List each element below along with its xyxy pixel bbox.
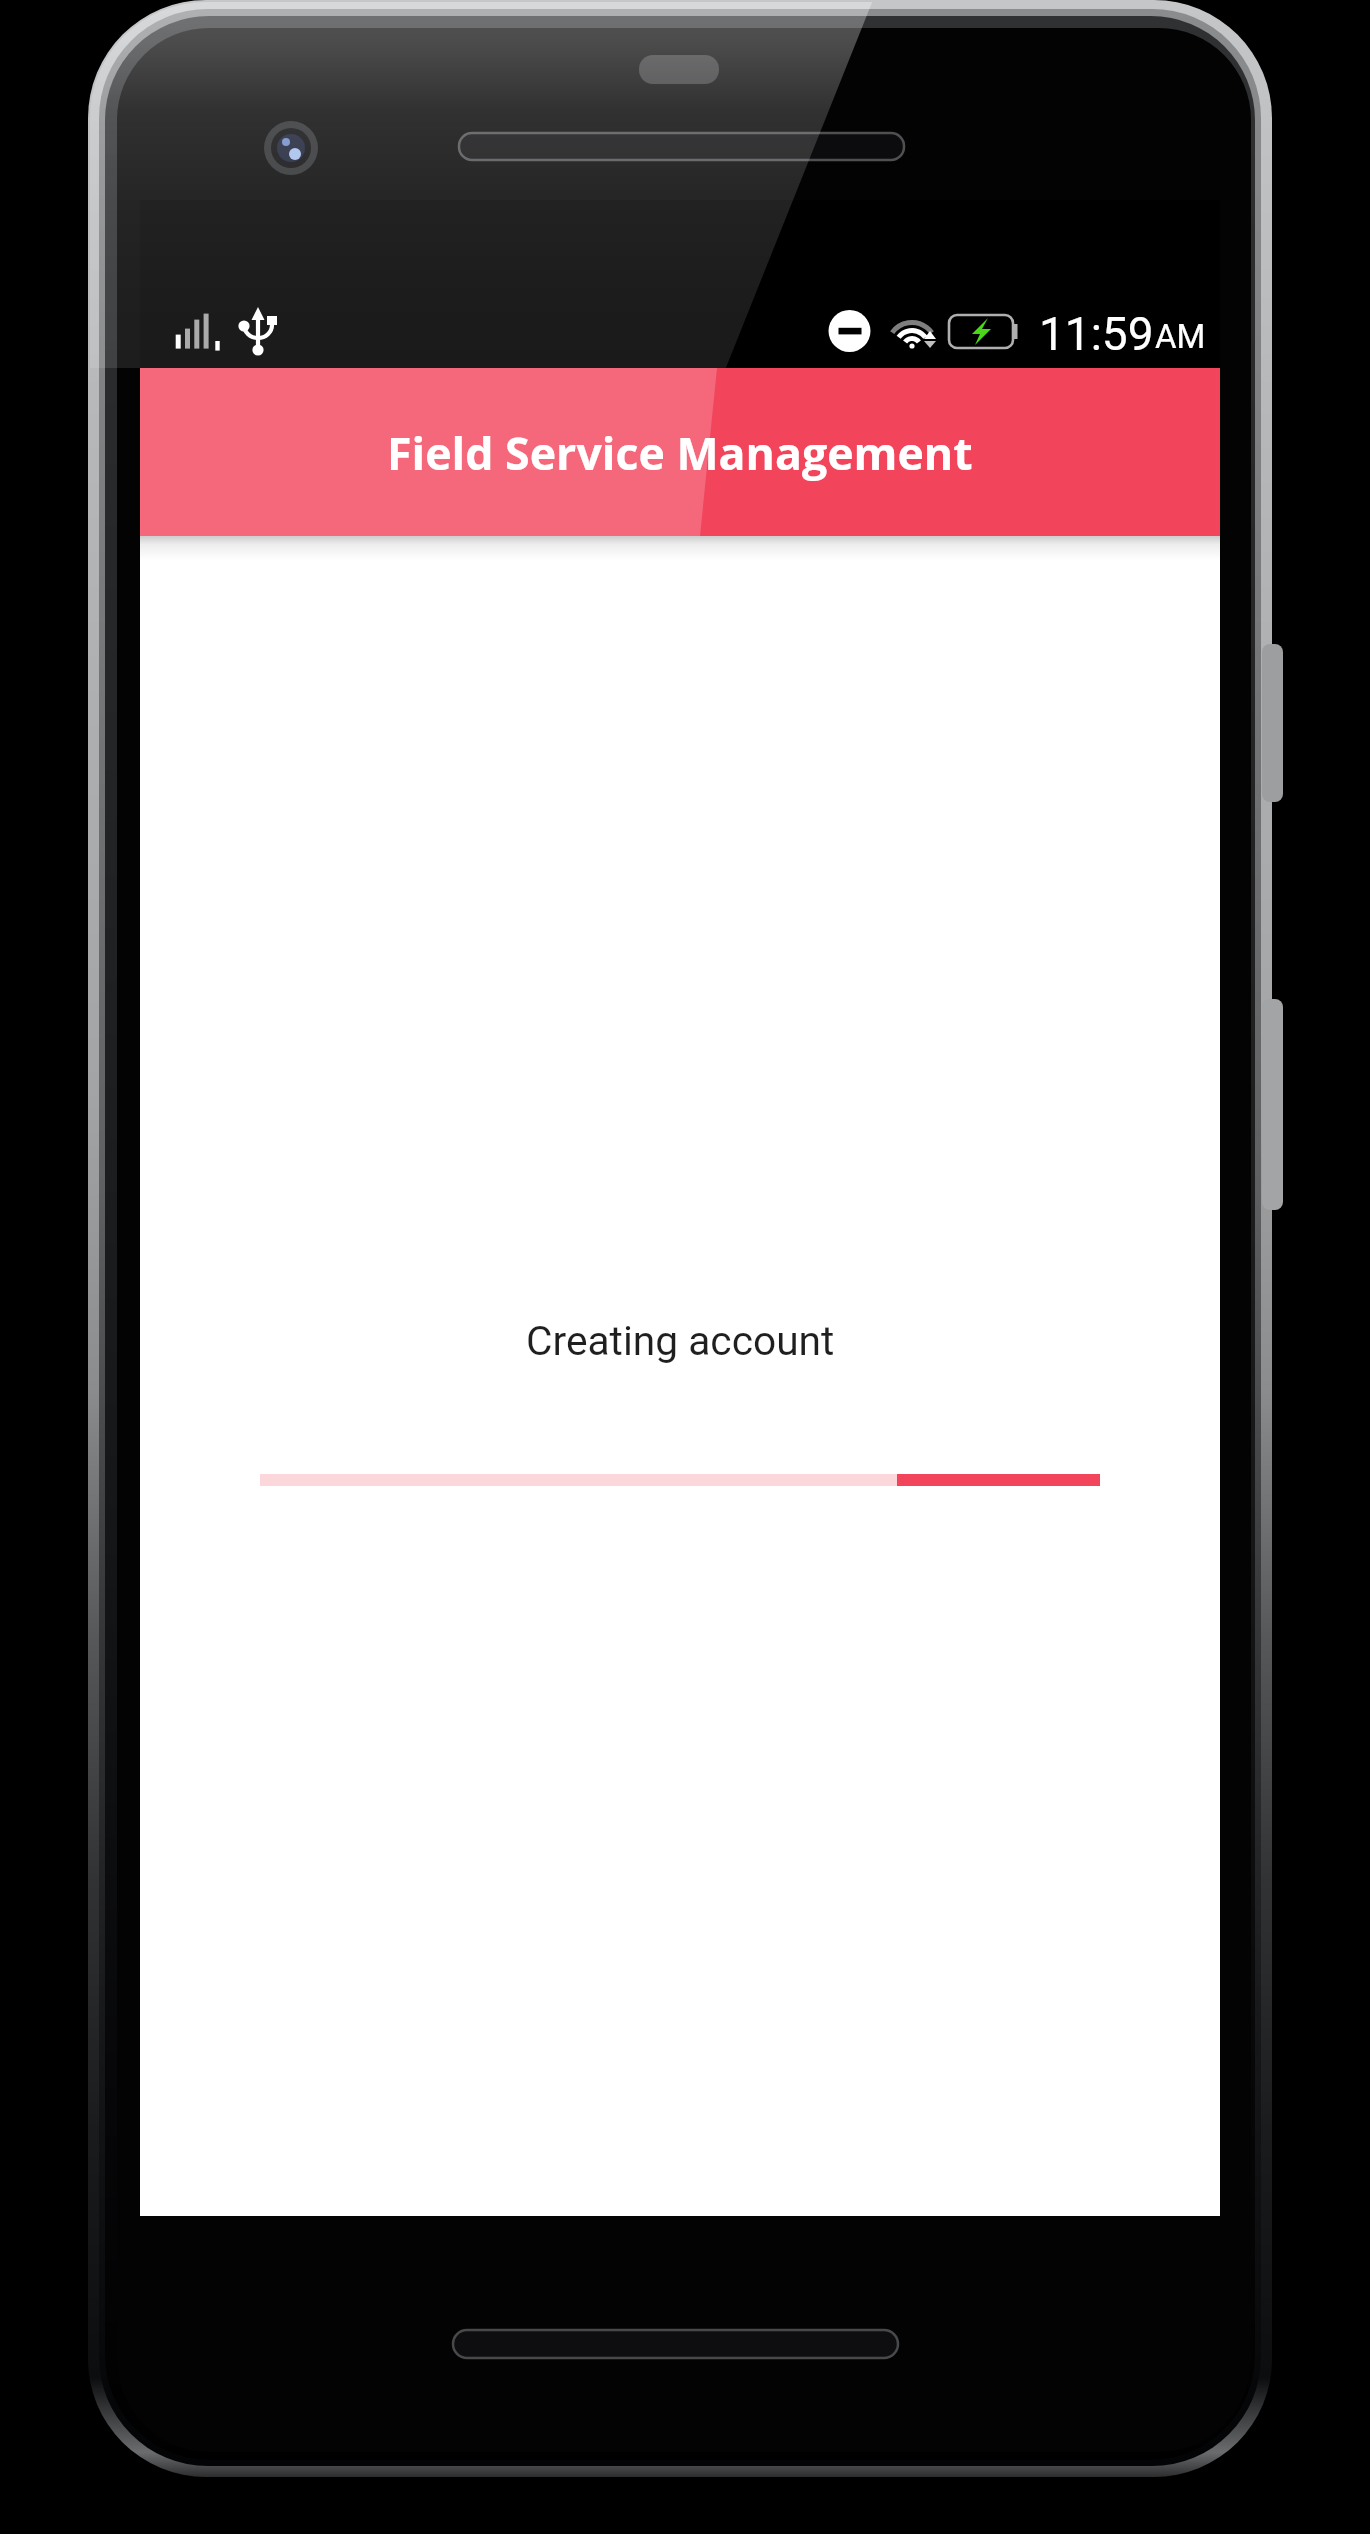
staticText: AM — [1155, 317, 1206, 356]
staticText: 11:59 — [1039, 307, 1154, 361]
button[interactable]: Field Service Management — [140, 368, 1220, 536]
staticText: Field Service Management — [387, 422, 973, 483]
staticText: Creating account — [526, 1317, 835, 1365]
